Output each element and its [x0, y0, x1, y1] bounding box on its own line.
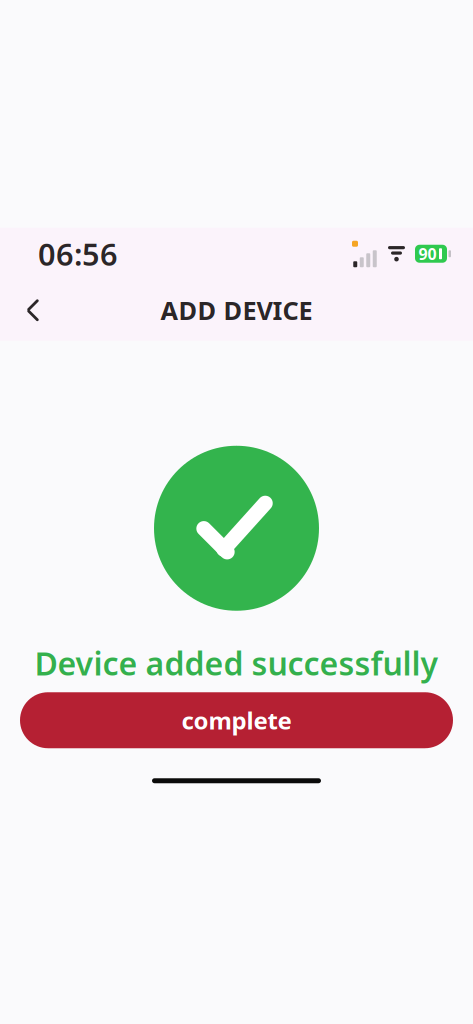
button[interactable]: complete: [20, 692, 453, 748]
staticText: ADD DEVICE: [160, 293, 312, 327]
staticText: Device added successfully: [34, 642, 438, 684]
staticText: 06:56: [38, 233, 118, 274]
button[interactable]: Back: [7, 284, 59, 336]
staticText: 90: [418, 243, 436, 264]
staticText: complete: [181, 704, 291, 736]
